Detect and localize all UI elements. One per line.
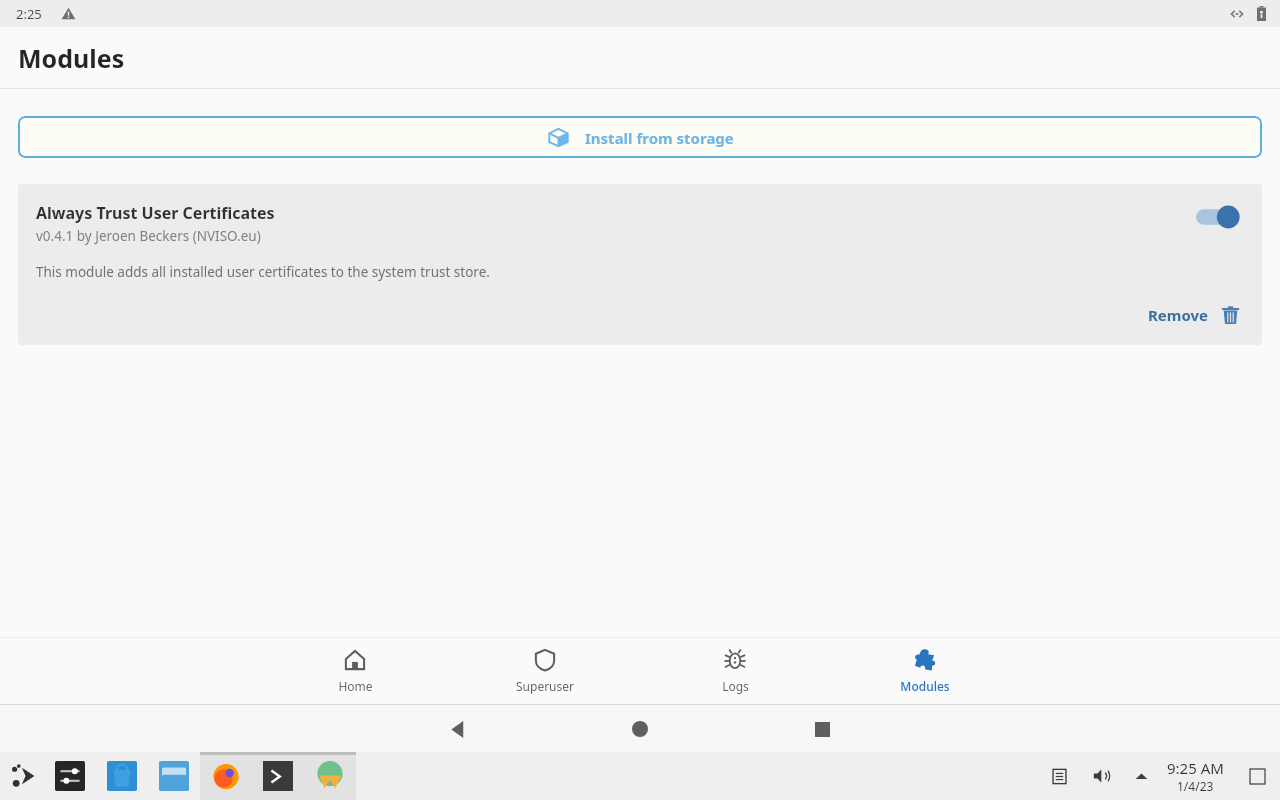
- staticText: 2:25: [16, 5, 42, 23]
- staticText: Modules: [18, 41, 125, 75]
- button[interactable]: Modules: [830, 638, 1020, 704]
- button[interactable]: Remove: [1142, 299, 1246, 331]
- button[interactable]: App: [96, 752, 148, 800]
- button[interactable]: Back: [440, 711, 476, 747]
- button[interactable]: App: [148, 752, 200, 800]
- button[interactable]: Install from storage: [18, 116, 1262, 158]
- button[interactable]: Recent apps: [804, 711, 840, 747]
- staticText: Superuser: [516, 678, 574, 694]
- staticText: 1/4/23: [1177, 778, 1214, 794]
- staticText: Home: [338, 678, 373, 694]
- staticText: This module adds all installed user cert…: [36, 263, 490, 281]
- button[interactable]: Show hidden icons: [1127, 762, 1155, 790]
- button[interactable]: All apps: [4, 756, 44, 796]
- button[interactable]: App: [44, 752, 96, 800]
- button[interactable]: Home: [260, 638, 450, 704]
- button[interactable]: Home: [622, 711, 658, 747]
- staticText: Remove: [1148, 305, 1209, 325]
- button[interactable]: Show desktop: [1242, 761, 1272, 791]
- button[interactable]: Toggle module enabled: [1196, 204, 1248, 230]
- button[interactable]: Logs: [640, 638, 830, 704]
- button[interactable]: 9:25 AM: [1161, 758, 1230, 794]
- button[interactable]: Always Trust User Certificates: [18, 184, 1262, 345]
- button[interactable]: Superuser: [450, 638, 640, 704]
- button[interactable]: Volume: [1085, 760, 1117, 792]
- staticText: v0.4.1 by Jeroen Beckers (NVISO.eu): [36, 227, 261, 245]
- button[interactable]: Notes: [1043, 760, 1075, 792]
- button[interactable]: App: [252, 752, 304, 800]
- staticText: Install from storage: [585, 128, 734, 148]
- staticText: Modules: [900, 678, 950, 694]
- button[interactable]: App: [200, 752, 252, 800]
- button[interactable]: App: [304, 752, 356, 800]
- staticText: Always Trust User Certificates: [36, 202, 275, 224]
- staticText: Logs: [722, 678, 749, 694]
- staticText: 9:25 AM: [1167, 758, 1224, 778]
